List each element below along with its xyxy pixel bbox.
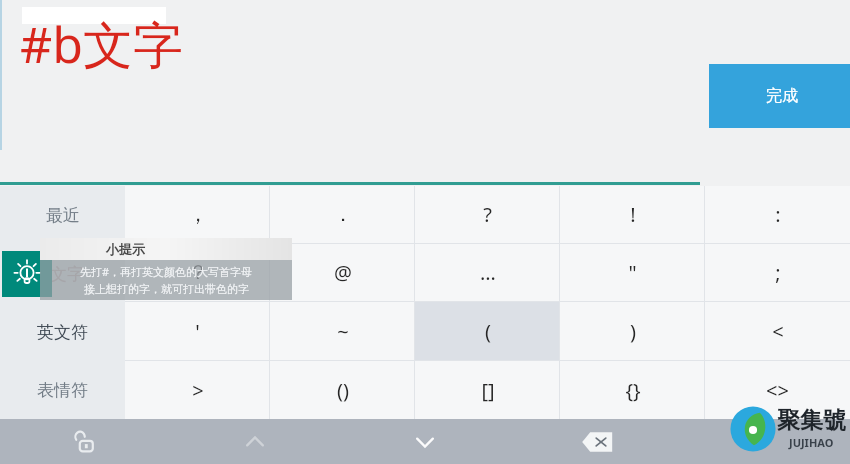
- button[interactable]: 最近: [0, 186, 125, 245]
- button[interactable]: Down: [340, 419, 510, 464]
- staticText: 聚集號: [777, 406, 846, 435]
- button[interactable]: 英文符: [0, 303, 125, 361]
- staticText: 最近: [46, 205, 80, 226]
- staticText: ;: [775, 259, 781, 286]
- staticText: 文字: [50, 264, 84, 285]
- staticText: ?: [483, 201, 492, 228]
- staticText: ~: [337, 318, 349, 345]
- button[interactable]: @: [270, 244, 415, 301]
- staticText: 小提示: [106, 241, 145, 257]
- staticText: ): [630, 318, 636, 345]
- staticText: …: [480, 259, 496, 286]
- button[interactable]: {}: [560, 361, 705, 419]
- staticText: (): [337, 377, 349, 404]
- button[interactable]: 完成: [709, 64, 850, 128]
- button[interactable]: Lock: [0, 419, 170, 464]
- button[interactable]: ~: [270, 302, 415, 360]
- button[interactable]: Backspace: [510, 419, 680, 464]
- staticText: #b文字: [20, 10, 184, 78]
- staticText: ．: [333, 202, 353, 227]
- staticText: (: [485, 318, 491, 345]
- staticText: 表情符: [37, 380, 88, 401]
- staticText: ，: [188, 202, 208, 227]
- button[interactable]: []: [415, 361, 560, 419]
- button[interactable]: ．: [270, 186, 415, 243]
- button[interactable]: 小提示: [2, 251, 52, 297]
- button[interactable]: ': [125, 302, 270, 360]
- staticText: JUJIHAO: [789, 435, 834, 450]
- button[interactable]: 表情符: [0, 361, 125, 419]
- button[interactable]: (): [270, 361, 415, 419]
- staticText: >: [192, 377, 204, 404]
- button[interactable]: !: [560, 186, 705, 243]
- staticText: <>: [766, 377, 789, 404]
- button[interactable]: <: [705, 302, 850, 360]
- button[interactable]: ;: [705, 244, 850, 301]
- button[interactable]: <>: [705, 361, 850, 419]
- staticText: {}: [625, 377, 641, 404]
- staticText: ': [195, 318, 200, 345]
- button[interactable]: ?: [415, 186, 560, 243]
- staticText: !: [630, 201, 636, 228]
- button[interactable]: >: [125, 361, 270, 419]
- button[interactable]: :: [705, 186, 850, 243]
- button[interactable]: ): [560, 302, 705, 360]
- button[interactable]: (: [415, 302, 560, 360]
- staticText: 先打#，再打英文颜色的大写首字母: [80, 264, 253, 279]
- staticText: []: [481, 377, 495, 404]
- button[interactable]: ，: [125, 186, 270, 243]
- button[interactable]: ？: [125, 244, 270, 301]
- button[interactable]: …: [415, 244, 560, 301]
- staticText: :: [775, 201, 781, 228]
- staticText: ？: [188, 260, 208, 285]
- staticText: 接上想打的字，就可打出带色的字: [84, 282, 249, 296]
- staticText: 完成: [766, 86, 798, 106]
- staticText: @: [334, 259, 352, 286]
- button[interactable]: ": [560, 244, 705, 301]
- staticText: ": [628, 259, 637, 286]
- staticText: <: [772, 318, 784, 345]
- staticText: 英文符: [37, 322, 88, 343]
